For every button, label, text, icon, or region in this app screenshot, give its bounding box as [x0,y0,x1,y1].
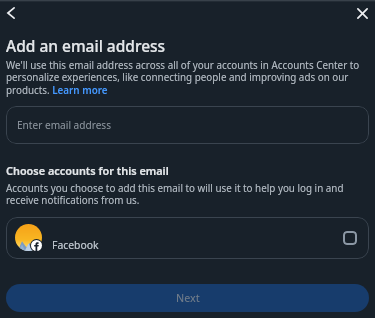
button[interactable]: Next [6,284,369,312]
button[interactable]: Close [347,0,373,26]
staticText: Choose accounts for this email [6,163,169,178]
button[interactable]: Facebook [6,217,369,259]
staticText: Enter email address [17,118,112,132]
button[interactable]: Back [0,0,26,26]
staticText: We'll use this email address across all … [6,58,369,97]
staticText: Accounts you choose to add this email to… [6,181,369,207]
staticText: Add an email address [6,35,166,56]
staticText: Facebook [52,238,99,252]
button[interactable]: Enter email address [6,106,369,144]
staticText: Next [176,291,200,305]
